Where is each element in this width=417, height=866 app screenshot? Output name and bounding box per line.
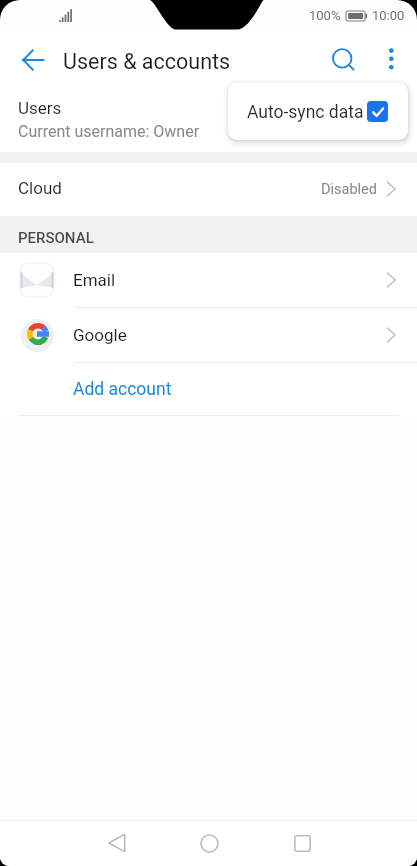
button[interactable]: Back	[94, 821, 138, 865]
staticText: PERSONAL	[18, 229, 94, 247]
button[interactable]: Back	[11, 38, 55, 82]
staticText: Auto-sync data	[247, 102, 364, 123]
button[interactable]: Home	[187, 821, 231, 865]
staticText: Email	[73, 270, 116, 290]
button[interactable]: Email	[0, 253, 417, 307]
button[interactable]: Search	[322, 37, 366, 81]
staticText: Current username: Owner	[18, 122, 200, 141]
staticText: Google	[73, 325, 127, 345]
staticText: 100%	[309, 8, 341, 23]
button[interactable]: More options	[369, 37, 413, 81]
staticText: Cloud	[18, 178, 62, 198]
button[interactable]: Auto-sync data	[228, 82, 408, 140]
button[interactable]: Recents	[280, 821, 324, 865]
button[interactable]: Google	[0, 308, 417, 362]
staticText: Disabled	[321, 181, 377, 198]
button[interactable]: Add account	[0, 363, 417, 415]
button[interactable]: Cloud	[0, 163, 417, 216]
staticText: Add account	[73, 379, 172, 400]
staticText: 10:00	[372, 8, 405, 23]
staticText: Users	[18, 98, 62, 118]
button[interactable]: Users	[0, 83, 417, 152]
staticText: Users & accounts	[63, 49, 231, 74]
